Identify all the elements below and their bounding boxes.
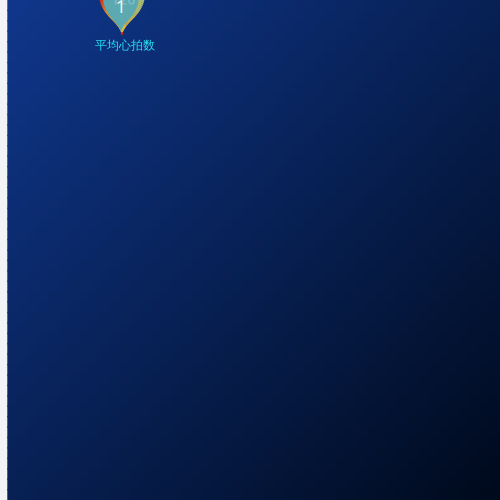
staticText: 1 bbox=[115, 0, 126, 18]
staticText: 平均心拍数 bbox=[95, 38, 155, 53]
staticText: 120 bbox=[111, 0, 135, 8]
